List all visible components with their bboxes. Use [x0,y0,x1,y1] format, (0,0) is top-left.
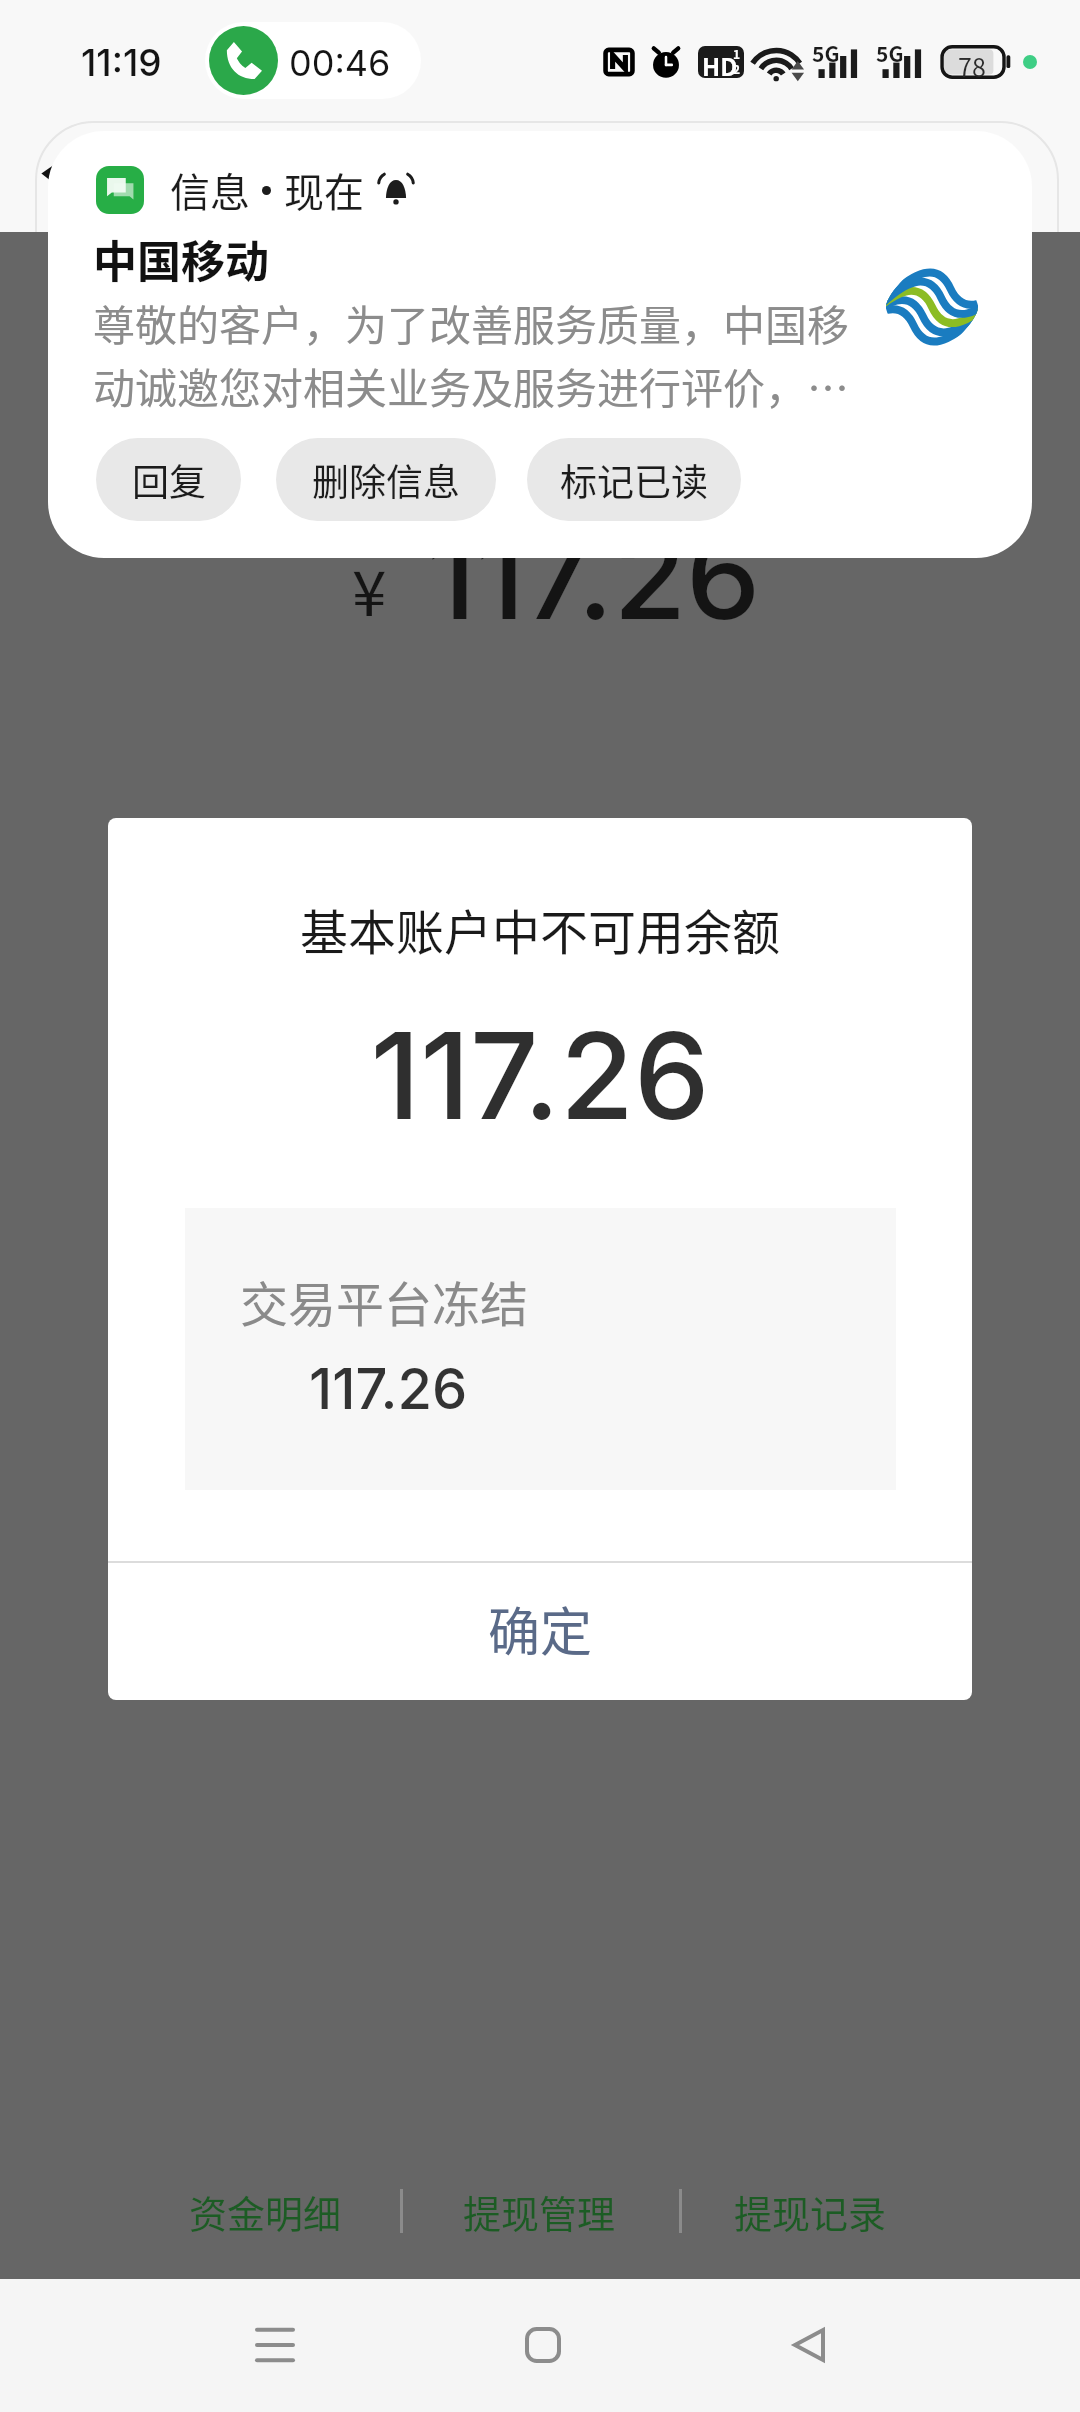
staticText: 00:46 [289,41,391,85]
staticText: ¥ [352,544,387,634]
button[interactable]: 提现管理 [452,2178,627,2244]
staticText: 5G [812,38,840,68]
staticText: 提现管理 [463,2184,616,2239]
staticText: 尊敬的客户，为了改善服务质量，中国移动诚邀您对相关业务及服务进行评价，… [93,292,855,416]
staticText: 中国移动 [93,227,269,291]
staticText: 1 [733,45,741,62]
staticText: 117.26 [309,1355,468,1423]
button[interactable]: Back [749,2285,869,2405]
button[interactable]: 资金明细 [178,2178,353,2244]
staticText: 确定 [488,1591,593,1666]
staticText: 交易平台冻结 [240,1266,529,1336]
staticText: 117.26 [108,1003,972,1148]
button[interactable]: 删除信息 [276,438,496,521]
staticText: 信息 [170,161,250,219]
staticText: 现在 [284,161,364,219]
staticText: 基本账户中不可用余额 [108,894,972,964]
staticText: 标记已读 [560,453,708,507]
staticText: 5G [876,38,904,68]
staticText: 78 [958,48,986,82]
staticText: 提现记录 [734,2184,887,2239]
button[interactable]: Home [483,2285,603,2405]
button[interactable]: 标记已读 [527,438,741,521]
staticText: 11:19 [81,40,162,85]
staticText: 117.26 [427,505,761,648]
staticText: 2 [733,60,741,77]
button[interactable]: 信息 [48,131,1032,558]
button[interactable]: 确定 [108,1560,972,1697]
staticText: 资金明细 [189,2184,342,2239]
staticText: HD [702,48,738,80]
button[interactable]: 回复 [96,438,241,521]
staticText: 回复 [132,453,206,507]
button[interactable]: 提现记录 [723,2178,898,2244]
button[interactable]: Ongoing call [205,22,421,99]
button[interactable]: Recents [215,2285,335,2405]
staticText: 删除信息 [312,453,460,507]
